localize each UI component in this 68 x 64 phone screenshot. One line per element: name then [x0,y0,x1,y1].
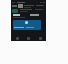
button[interactable] [13,20,41,30]
button[interactable] [12,9,18,13]
button[interactable]: Tab 1 [23,35,34,41]
button[interactable]: Tab 2 [35,35,46,41]
button[interactable]: Tab 0 [12,35,23,41]
